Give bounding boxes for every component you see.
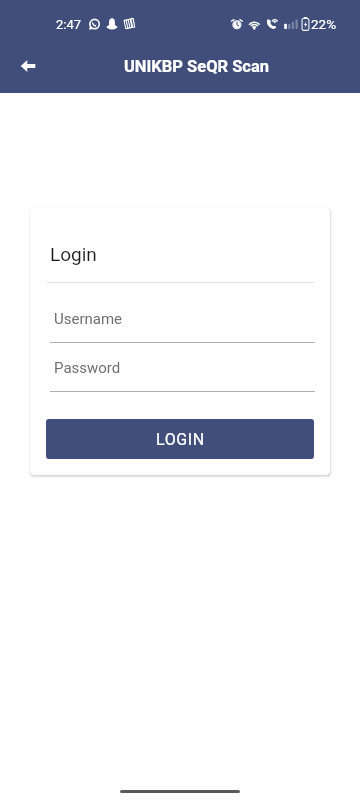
button[interactable]: Back — [8, 46, 48, 86]
staticText: 2:47 — [56, 17, 82, 32]
button[interactable]: Username — [50, 310, 315, 343]
staticText: 22% — [311, 16, 337, 32]
staticText: Login — [50, 243, 97, 265]
staticText: Username — [54, 310, 123, 328]
staticText: UNIKBP SeQR Scan — [124, 57, 270, 76]
button[interactable]: LOGIN — [46, 419, 314, 459]
staticText: LOGIN — [156, 430, 205, 449]
staticText: Password — [54, 359, 121, 377]
button[interactable]: Password — [50, 359, 315, 392]
